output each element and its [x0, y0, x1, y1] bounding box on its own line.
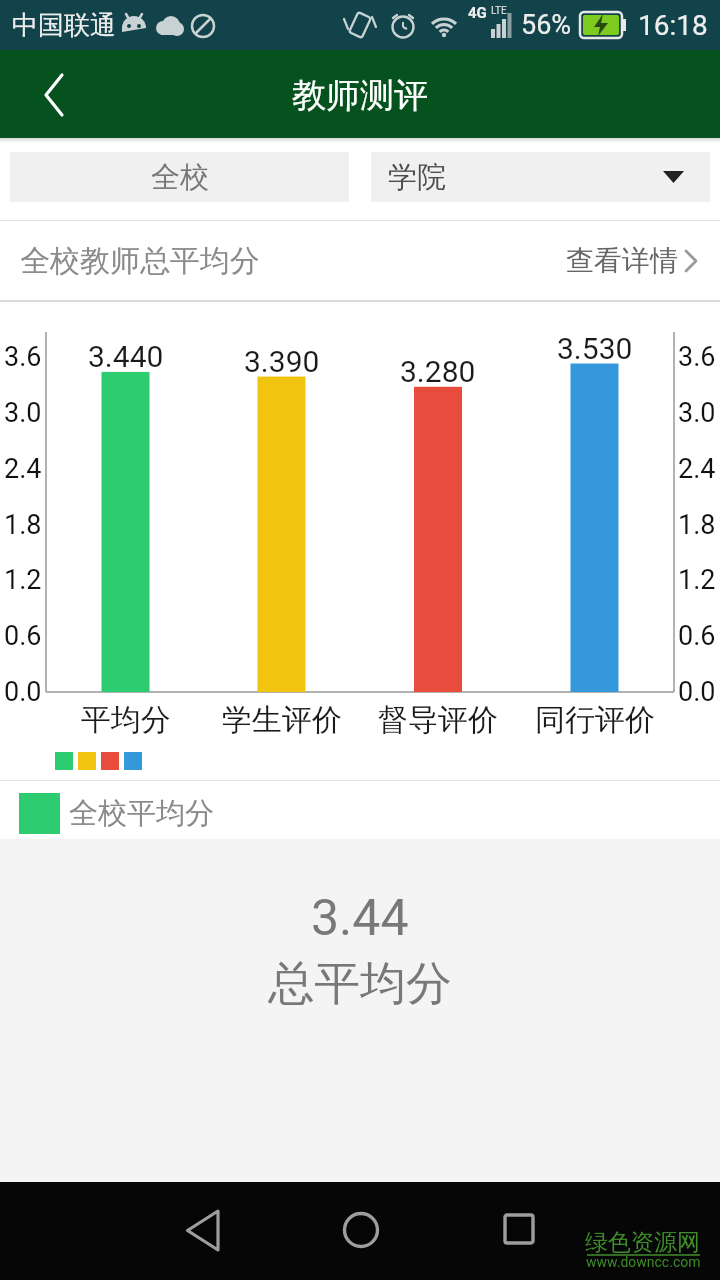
staticText: 3.0: [4, 397, 42, 429]
staticText: 1.8: [4, 509, 42, 541]
staticText: 学生评价: [222, 701, 342, 737]
staticText: 2.4: [4, 453, 42, 485]
staticText: 3.0: [678, 397, 716, 429]
staticText: 总平均分: [268, 955, 452, 1013]
button[interactable]: 查看详情: [566, 221, 720, 300]
staticText: 3.440: [88, 339, 164, 373]
staticText: 平均分: [81, 701, 171, 737]
staticText: 1.2: [678, 564, 716, 596]
staticText: 3.6: [678, 341, 716, 373]
staticText: 56%: [521, 9, 572, 41]
staticText: 查看详情: [566, 243, 678, 278]
staticText: 0.0: [4, 676, 42, 708]
staticText: www.downcc.com: [586, 1254, 701, 1270]
staticText: 1.8: [678, 509, 716, 541]
staticText: 16:18: [638, 9, 708, 42]
staticText: 0.6: [4, 620, 42, 652]
button[interactable]: 全校: [10, 152, 349, 202]
staticText: LTE: [491, 5, 507, 17]
staticText: 3.390: [244, 344, 320, 378]
staticText: 绿色资源网: [585, 1228, 700, 1257]
button[interactable]: [462, 1182, 572, 1280]
staticText: 4G: [468, 4, 487, 22]
staticText: 3.44: [311, 889, 409, 948]
staticText: 同行评价: [535, 701, 655, 737]
staticText: 全校教师总平均分: [20, 242, 260, 280]
staticText: 全校: [151, 159, 209, 196]
button[interactable]: [0, 50, 90, 138]
staticText: 学院: [388, 159, 446, 196]
staticText: 中国联通: [12, 9, 116, 42]
button[interactable]: [305, 1182, 415, 1280]
button[interactable]: 学院: [371, 152, 710, 202]
staticText: 0.0: [678, 676, 716, 708]
staticText: 督导评价: [378, 701, 498, 737]
staticText: 1.2: [4, 564, 42, 596]
staticText: 0.6: [678, 620, 716, 652]
staticText: 教师测评: [292, 74, 428, 117]
staticText: 3.6: [4, 341, 42, 373]
staticText: 3.280: [400, 354, 476, 388]
staticText: 3.530: [557, 331, 633, 365]
staticText: 2.4: [678, 453, 716, 485]
button[interactable]: [150, 1182, 260, 1280]
staticText: 全校平均分: [69, 795, 214, 832]
